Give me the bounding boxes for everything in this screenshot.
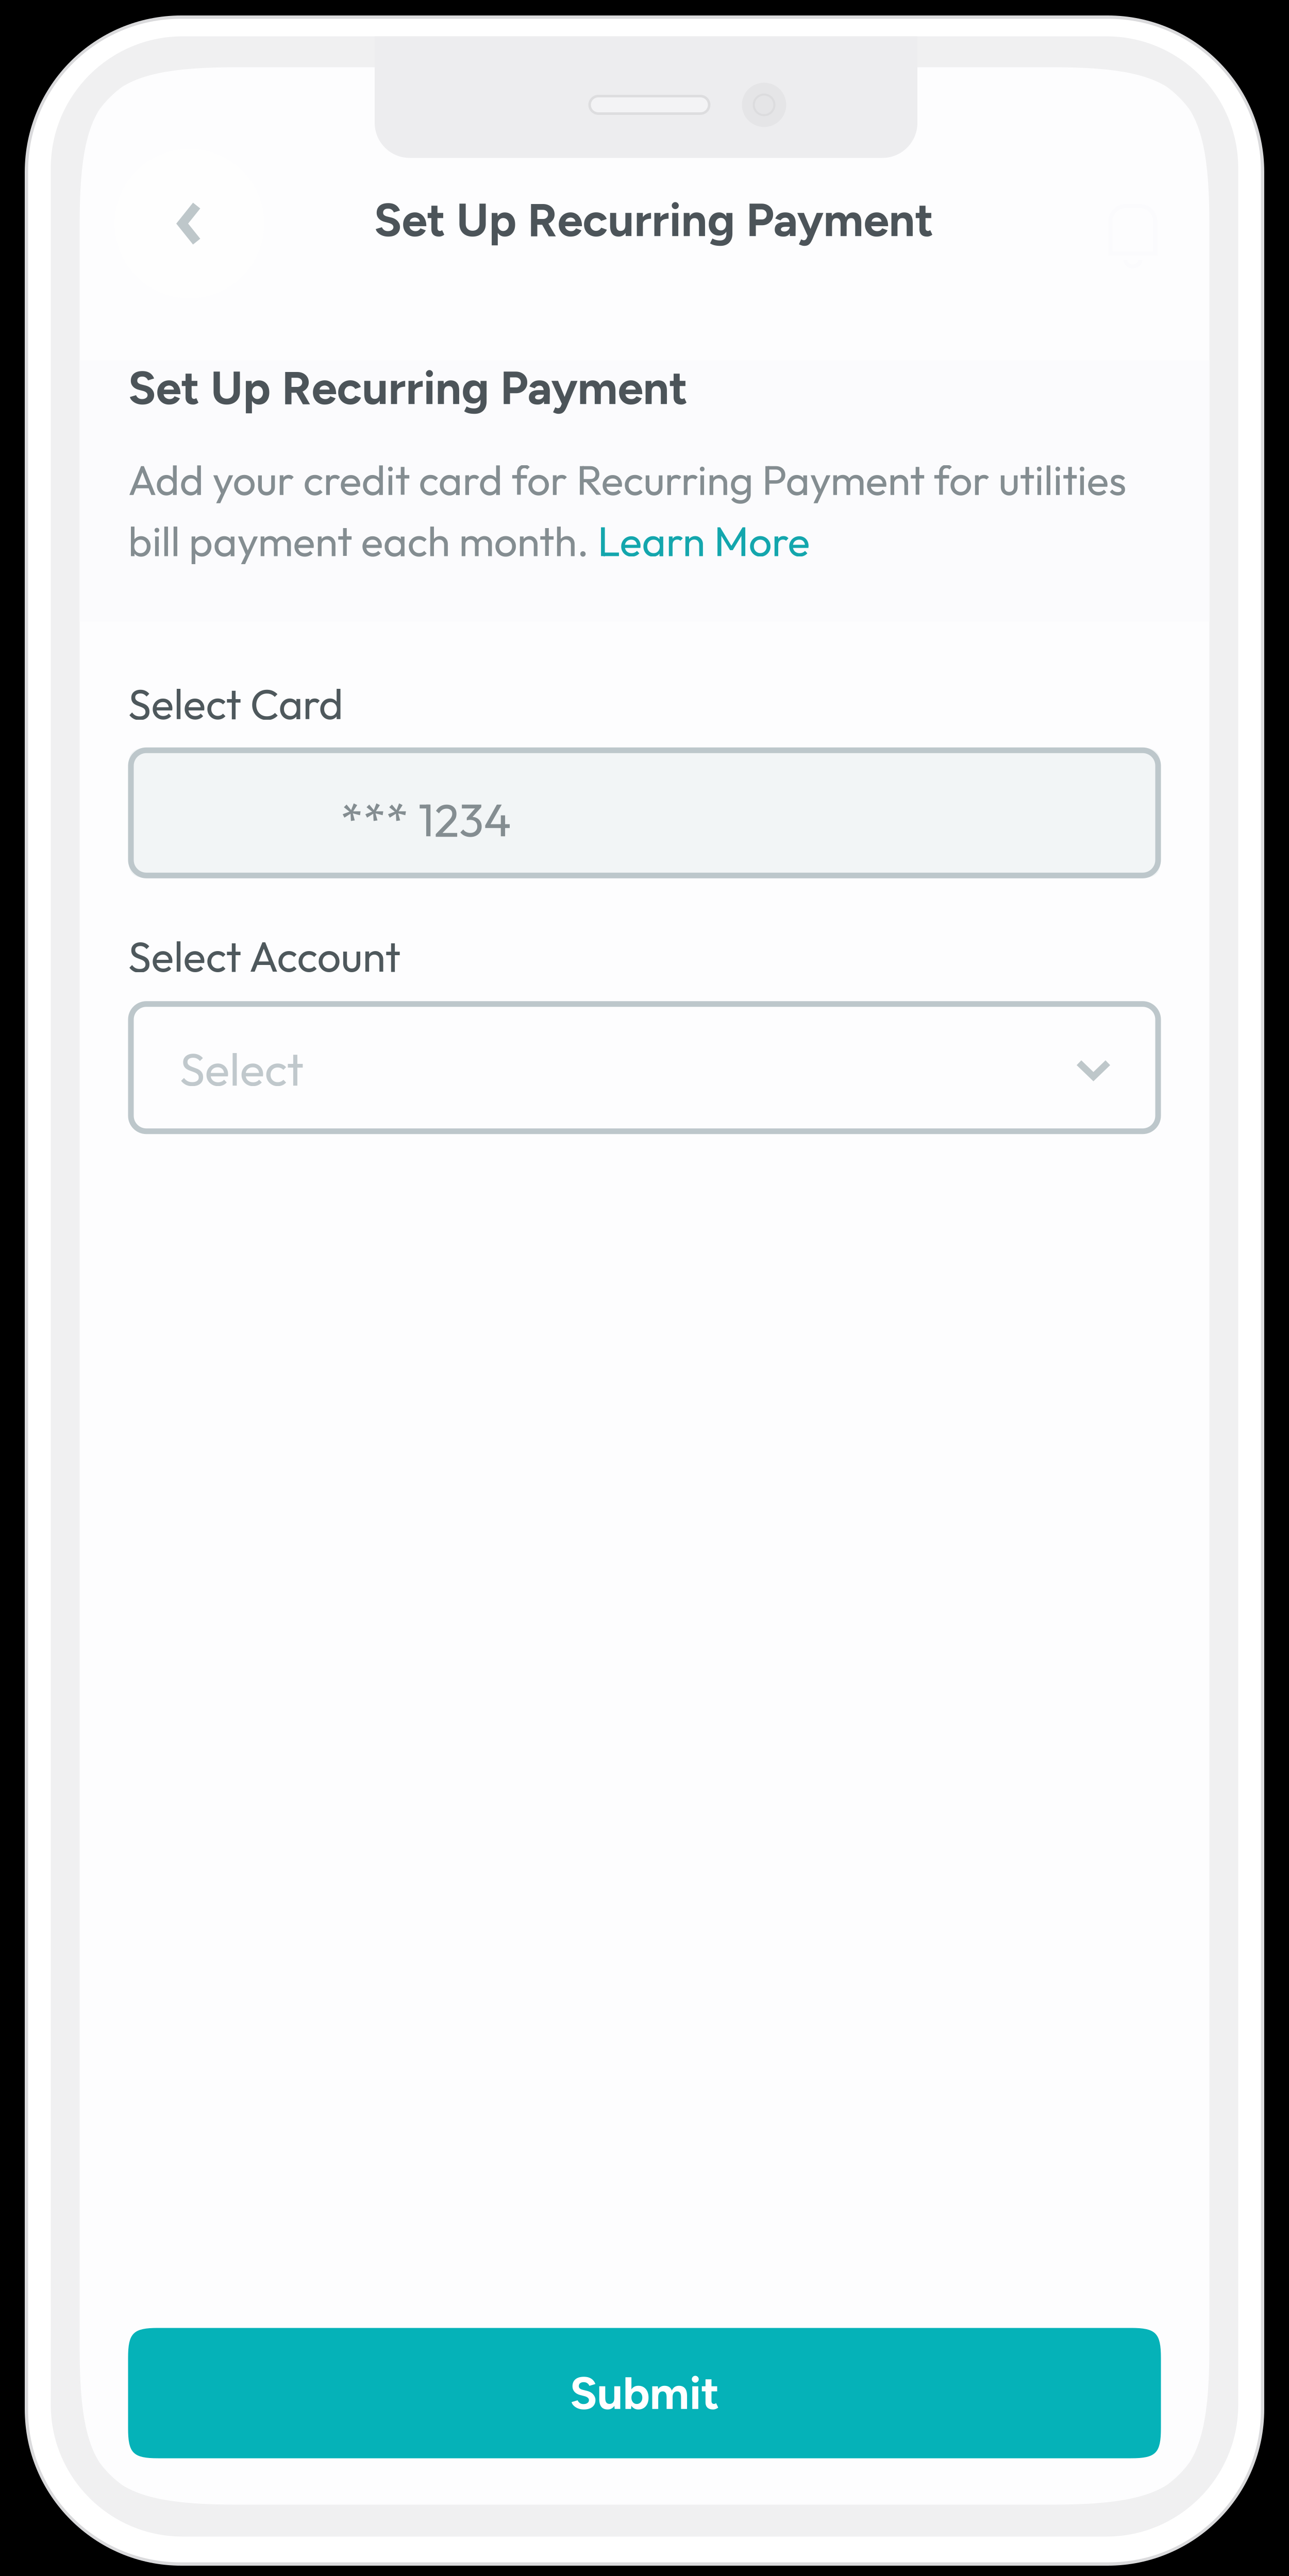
staticText: Submit (570, 2366, 719, 2420)
staticText: Add your credit card for Recurring Payme… (128, 454, 1126, 506)
staticText: Select Card (128, 677, 343, 730)
staticText: Learn More (598, 515, 810, 567)
button[interactable]: *** 1234 (128, 747, 1161, 878)
button[interactable]: Back (115, 149, 264, 298)
button[interactable]: Submit (128, 2328, 1161, 2458)
staticText: Set Up Recurring Payment (128, 360, 688, 416)
staticText: Set Up Recurring Payment (374, 192, 934, 248)
staticText: bill payment each month. (128, 515, 598, 567)
staticText: *** 1234 (340, 791, 511, 849)
button[interactable]: Select (128, 1001, 1161, 1134)
staticText: Select (180, 1040, 304, 1098)
staticText: Select Account (128, 930, 401, 983)
